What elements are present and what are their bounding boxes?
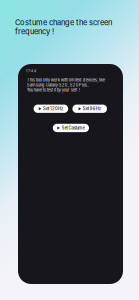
staticText: This tool only work with limited devices… [27,78,105,93]
staticText: Set 120Hz [43,106,63,111]
staticText: Set 96Hz [83,106,101,111]
button[interactable]: Set 120Hz [34,105,68,113]
staticText: 17:44 [26,68,37,73]
staticText: Costume change the screen frequency ! [15,18,112,36]
staticText: Set Costume [61,125,84,130]
button[interactable]: Set Costume [53,124,89,132]
button[interactable]: Set 96Hz [72,105,107,113]
